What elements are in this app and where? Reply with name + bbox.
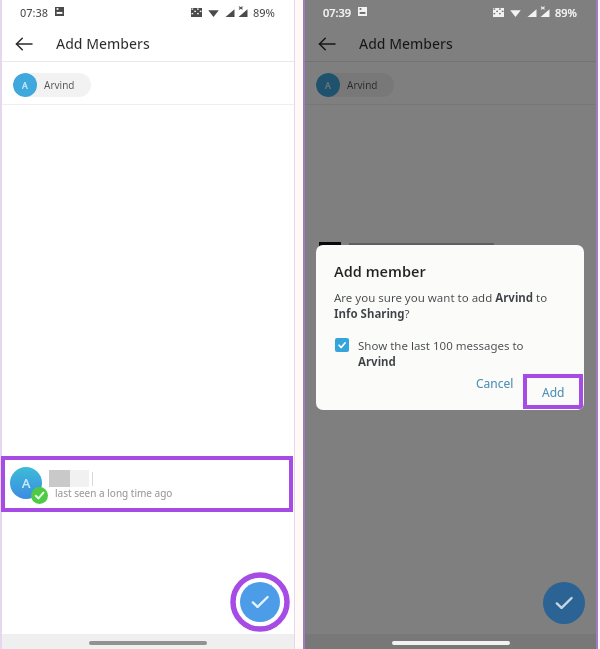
staticText: Show the last 100 messages to Arvind bbox=[358, 338, 548, 369]
staticText: 89% bbox=[253, 5, 275, 20]
button[interactable]: Add bbox=[523, 374, 583, 409]
staticText: 07:39 bbox=[323, 5, 352, 20]
staticText: Add Members bbox=[359, 34, 453, 53]
button[interactable]: Show last 100 messages bbox=[335, 338, 349, 352]
staticText: Cancel bbox=[476, 375, 514, 391]
button[interactable]: A bbox=[13, 73, 91, 97]
staticText: A bbox=[22, 79, 28, 91]
staticText: A bbox=[325, 79, 331, 91]
button[interactable]: Back bbox=[16, 36, 32, 52]
staticText: last seen a long time ago bbox=[55, 486, 173, 500]
button[interactable]: A bbox=[5, 459, 290, 509]
staticText: Arvind bbox=[44, 78, 75, 92]
staticText: Are you sure you want to add Arvind to I… bbox=[334, 290, 556, 321]
button[interactable]: Confirm bbox=[240, 582, 280, 622]
staticText: Add Members bbox=[56, 34, 150, 53]
staticText: A bbox=[22, 474, 31, 492]
staticText: Add bbox=[542, 384, 565, 400]
staticText: Arvind bbox=[347, 78, 378, 92]
button[interactable]: Back bbox=[319, 36, 335, 52]
button[interactable]: A bbox=[316, 73, 394, 97]
button[interactable]: Confirm bbox=[543, 582, 585, 624]
button[interactable]: Cancel bbox=[468, 367, 522, 399]
staticText: Add member bbox=[334, 261, 426, 281]
staticText: 89% bbox=[555, 5, 577, 20]
staticText: 07:38 bbox=[20, 5, 49, 20]
